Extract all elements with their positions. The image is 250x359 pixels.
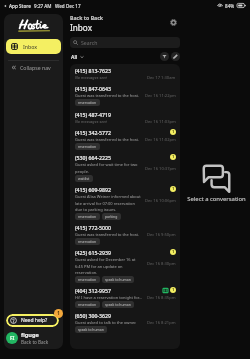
- staticText: Dec 16 10:06pm: [145, 198, 176, 204]
- staticText: (415) 609-9892: [75, 186, 111, 193]
- staticText: (415) 772-5000: [75, 224, 111, 231]
- staticText: Guest asked for wait time for two people…: [75, 162, 143, 174]
- staticText: All: [71, 53, 78, 60]
- staticText: Dec 16 9:50pm: [147, 232, 176, 238]
- button[interactable]: All: [70, 52, 85, 61]
- staticText: (415) 487-4719: [75, 111, 111, 118]
- staticText: speak to human: [105, 277, 131, 282]
- staticText: Guest asked to talk to the owner.: [75, 320, 149, 325]
- staticText: (425) 615-2939: [75, 249, 111, 256]
- staticText: 1: [172, 287, 175, 293]
- staticText: (650) 300-3629: [75, 312, 111, 319]
- staticText: App Store: [9, 3, 31, 9]
- staticText: Dec 16 8:30pm: [147, 261, 176, 267]
- staticText: 84%: [225, 3, 235, 9]
- button[interactable]: (404) 312-9957: [70, 285, 180, 310]
- staticText: Guest asked for December 16 at 6:45 PM f…: [75, 257, 143, 275]
- staticText: (415) 342-5772: [75, 129, 111, 136]
- staticText: Guest was transferred to the host.: [75, 137, 149, 142]
- staticText: Dec 16 8:21pm: [147, 320, 176, 326]
- staticText: reservation: [78, 144, 97, 149]
- button[interactable]: (415) 772-5000: [70, 222, 180, 247]
- staticText: Dec 16 11:03pm: [145, 119, 176, 125]
- staticText: FI: [10, 335, 15, 341]
- staticText: Collapse nav: [20, 64, 51, 71]
- button[interactable]: FI: [4, 331, 63, 344]
- staticText: reservation: [78, 302, 97, 307]
- staticText: Dec 16 10:37pm: [145, 166, 176, 172]
- button[interactable]: (415) 813-7623: [70, 64, 180, 83]
- staticText: Dec 17 1:30am: [147, 75, 176, 81]
- staticText: 9:27 AM: [34, 3, 52, 9]
- button[interactable]: (415) 487-4719: [70, 108, 180, 127]
- staticText: reservation: [78, 239, 97, 244]
- staticText: 1: [172, 154, 175, 160]
- button[interactable]: Filter: [160, 52, 169, 61]
- staticText: 1: [172, 249, 175, 255]
- staticText: Hi! I have a reservation tonight for...: [75, 295, 149, 300]
- staticText: (415) 847-0643: [75, 85, 111, 92]
- staticText: Guest Alisa Weiner informed about late a…: [75, 194, 143, 212]
- staticText: (415) 813-7623: [75, 67, 111, 74]
- staticText: No messages sent: [75, 119, 149, 124]
- button[interactable]: Search: [70, 37, 180, 48]
- staticText: speak to human: [105, 302, 131, 307]
- button[interactable]: (425) 615-2939: [70, 247, 180, 285]
- staticText: Inbox: [70, 22, 92, 33]
- staticText: Guest was transferred to the host.: [75, 232, 149, 237]
- staticText: reservation: [78, 100, 97, 105]
- staticText: 1: [172, 129, 175, 135]
- button[interactable]: Compose message: [171, 52, 180, 61]
- staticText: Guest was transferred to the host.: [75, 93, 149, 98]
- button[interactable]: (650) 300-3629: [70, 310, 180, 335]
- button[interactable]: (415) 847-0643: [70, 83, 180, 108]
- staticText: (404) 312-9957: [75, 287, 111, 294]
- staticText: Dec 16 11:22pm: [145, 93, 176, 99]
- staticText: Dec 16 8:35pm: [147, 295, 176, 301]
- staticText: Search: [81, 39, 98, 46]
- staticText: Back to Back: [70, 14, 104, 21]
- staticText: Back to Back: [21, 339, 49, 344]
- button[interactable]: (415) 342-5772: [70, 127, 180, 152]
- staticText: Inbox: [23, 43, 38, 50]
- staticText: reservation: [78, 214, 97, 219]
- staticText: Wed Dec 17: [55, 3, 81, 9]
- button[interactable]: (415) 609-9892: [70, 184, 180, 222]
- staticText: Need help?: [21, 317, 48, 324]
- button[interactable]: (530) 664-2225: [70, 152, 180, 184]
- staticText: (530) 664-2225: [75, 154, 111, 161]
- button[interactable]: Need help?: [6, 314, 59, 327]
- staticText: 1: [172, 186, 175, 192]
- button[interactable]: Collapse nav: [4, 62, 63, 73]
- staticText: speak to human: [78, 327, 104, 332]
- staticText: waitlist: [78, 176, 90, 181]
- button[interactable]: Inbox: [6, 39, 61, 54]
- staticText: reservation: [78, 277, 97, 282]
- staticText: 1: [57, 310, 60, 317]
- staticText: No messages sent: [75, 75, 149, 80]
- staticText: figuge: [21, 331, 39, 339]
- staticText: Select a conversation: [187, 195, 246, 203]
- button[interactable]: Settings: [166, 15, 180, 29]
- staticText: Dec 16 11:02pm: [145, 137, 176, 143]
- staticText: parking: [105, 214, 118, 219]
